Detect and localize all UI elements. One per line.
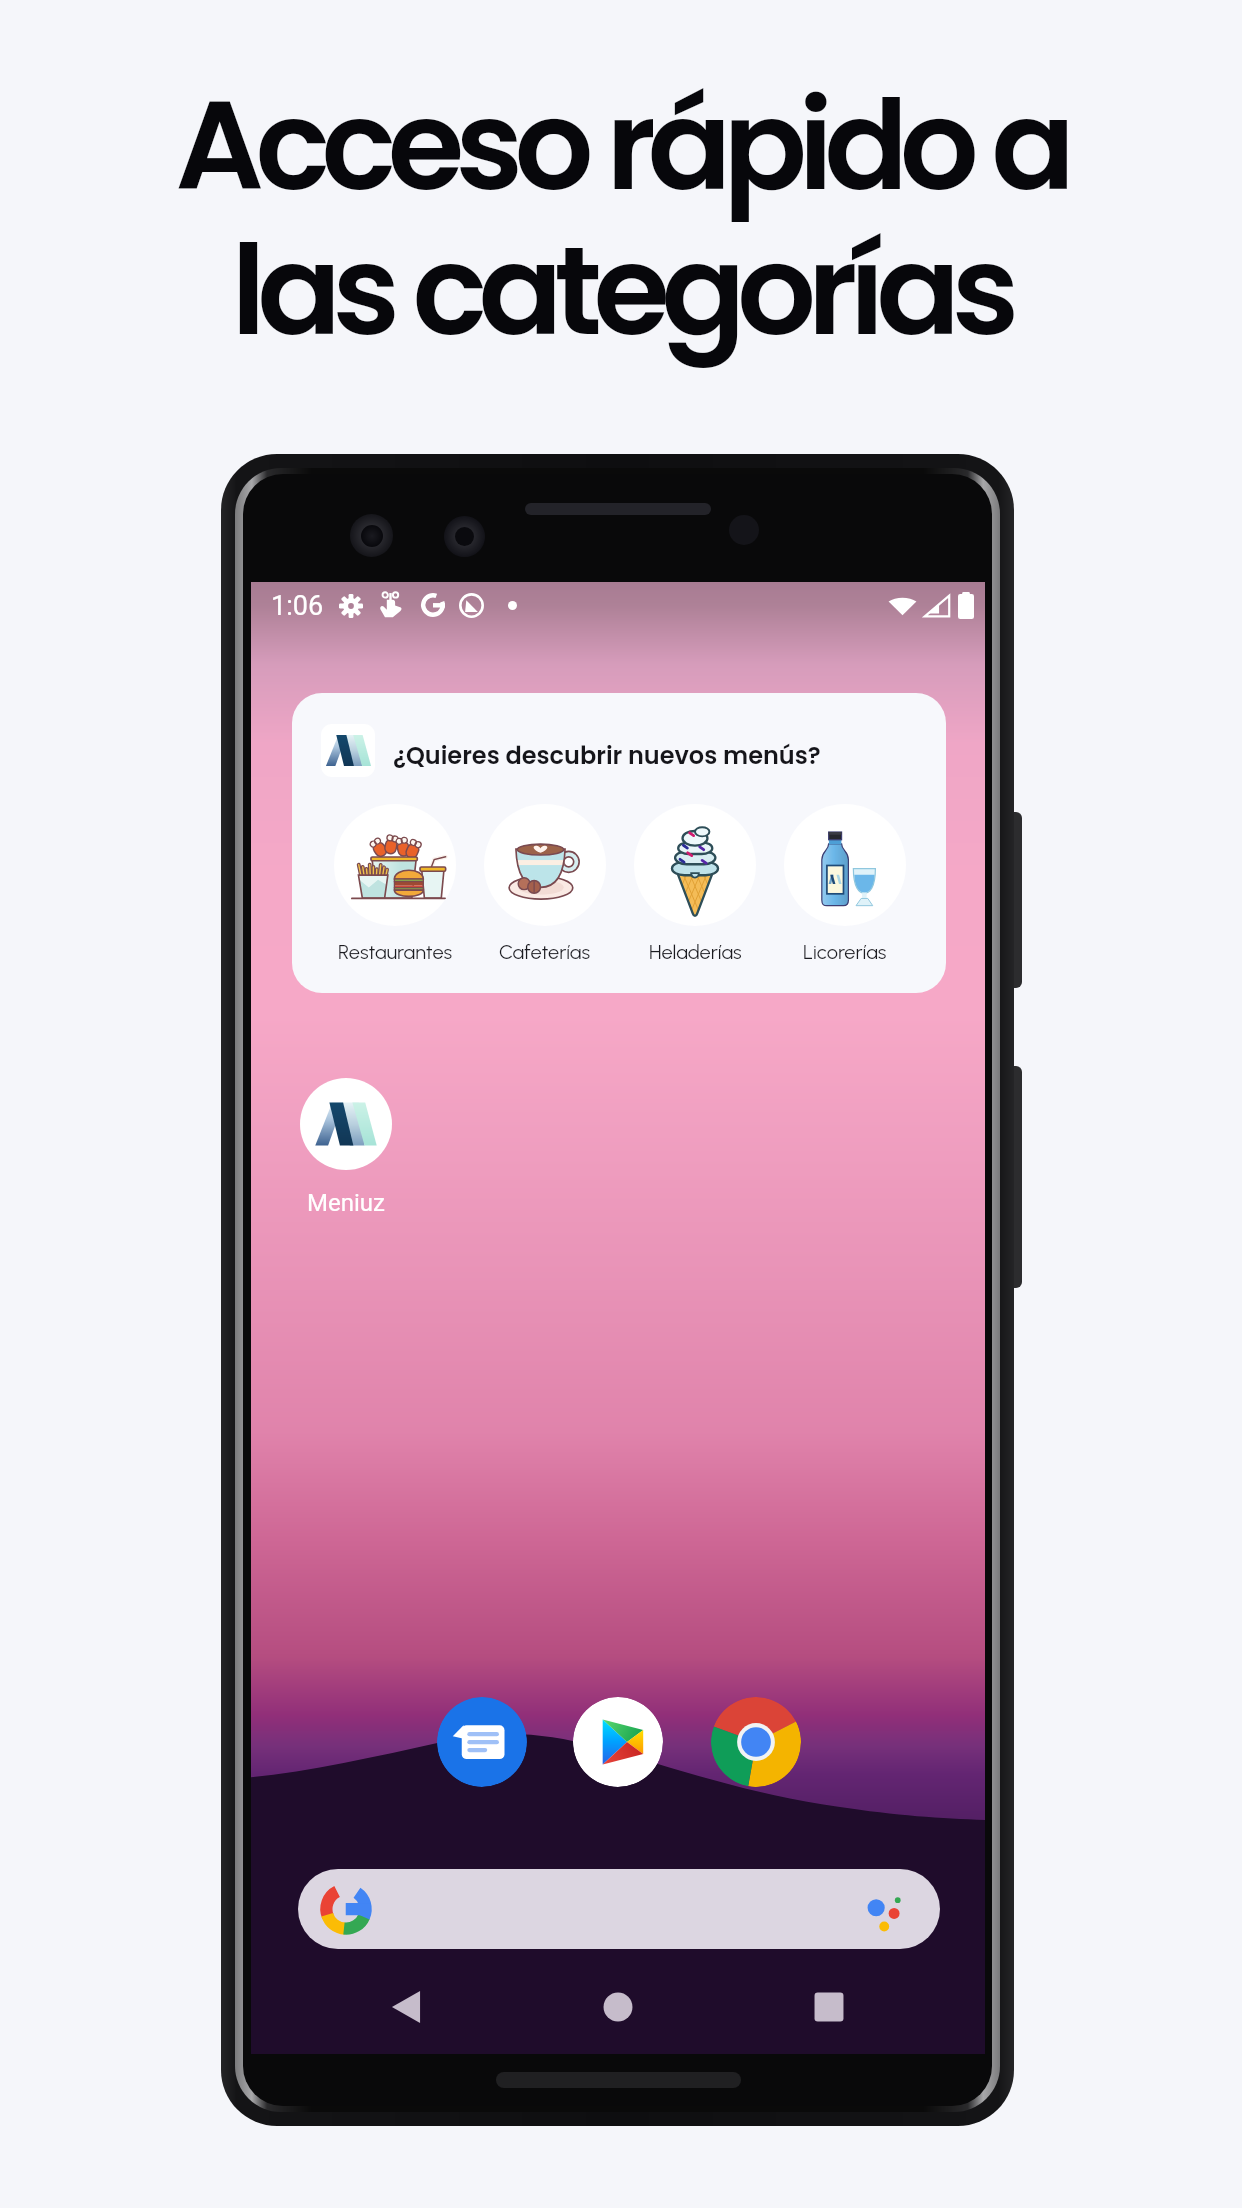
button[interactable]: Chrome	[711, 1697, 801, 1787]
staticText: Meniuz	[307, 1189, 385, 1217]
staticText: ¿Quieres descubrir nuevos menús?	[393, 739, 821, 773]
button[interactable]: Play Store	[573, 1697, 663, 1787]
staticText: 1:06	[271, 590, 324, 622]
staticText: Licorerías	[803, 940, 887, 964]
button[interactable]: Heladerías	[620, 804, 770, 964]
button[interactable]: Home	[582, 1971, 654, 2043]
button[interactable]: Meniuz	[277, 1078, 415, 1217]
button[interactable]: ¿Quieres descubrir nuevos menús?	[292, 693, 946, 993]
button[interactable]: Recents	[793, 1971, 865, 2043]
button[interactable]: Back	[370, 1971, 442, 2043]
staticText: Restaurantes	[338, 940, 453, 964]
staticText: Acceso rápido a las categorías	[175, 59, 1067, 377]
staticText: Cafeterías	[499, 940, 591, 964]
button[interactable]: Search	[298, 1869, 940, 1949]
button[interactable]: Licorerías	[770, 804, 920, 964]
staticText: Heladerías	[649, 940, 742, 964]
button[interactable]: Restaurantes	[320, 804, 470, 964]
button[interactable]: Cafeterías	[470, 804, 620, 964]
button[interactable]: Messages	[437, 1697, 527, 1787]
